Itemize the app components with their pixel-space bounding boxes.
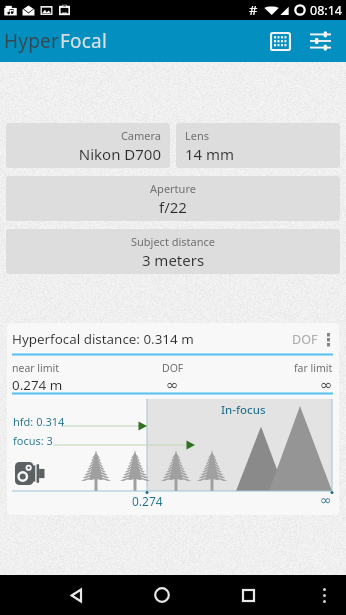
button[interactable]: Aperture bbox=[6, 176, 340, 221]
staticText: In-focus bbox=[221, 402, 266, 418]
button[interactable]: Settings bbox=[300, 20, 340, 62]
staticText: 14 mm bbox=[185, 144, 331, 164]
button[interactable]: Camera bbox=[6, 123, 170, 168]
staticText: # bbox=[249, 1, 258, 19]
staticText: Aperture bbox=[15, 181, 331, 196]
button[interactable]: Lens bbox=[176, 123, 340, 168]
staticText: Subject distance bbox=[15, 234, 331, 249]
staticText: Nikon D700 bbox=[15, 144, 161, 164]
staticText: DOF bbox=[292, 331, 318, 348]
staticText: 08:14 bbox=[310, 2, 342, 19]
staticText: ∞ bbox=[320, 492, 332, 508]
staticText: 0.274 bbox=[132, 493, 163, 509]
staticText: ∞ bbox=[166, 376, 179, 393]
staticText: Hyperfocal distance: 0.314 m bbox=[12, 330, 194, 348]
button[interactable]: Recents bbox=[228, 575, 268, 615]
button[interactable]: Subject distance bbox=[6, 229, 340, 274]
button[interactable]: More options bbox=[309, 580, 339, 610]
staticText: Camera bbox=[15, 128, 161, 143]
button[interactable]: More options bbox=[323, 326, 333, 352]
staticText: ∞ bbox=[320, 376, 333, 393]
staticText: near limit bbox=[12, 361, 60, 375]
button[interactable]: Home bbox=[142, 575, 182, 615]
staticText: Focal bbox=[60, 28, 108, 54]
button[interactable]: Table view bbox=[260, 20, 300, 62]
staticText: 3 meters bbox=[15, 250, 331, 270]
button[interactable]: Back bbox=[56, 575, 96, 615]
staticText: f/22 bbox=[15, 197, 331, 217]
staticText: far limit bbox=[294, 361, 333, 375]
staticText: hfd: 0.314 bbox=[13, 414, 65, 429]
staticText: focus: 3 bbox=[13, 433, 53, 448]
staticText: 0.274 m bbox=[12, 376, 63, 394]
staticText: DOF bbox=[162, 361, 184, 375]
staticText: Lens bbox=[185, 128, 331, 143]
staticText: Hyper bbox=[4, 28, 60, 54]
